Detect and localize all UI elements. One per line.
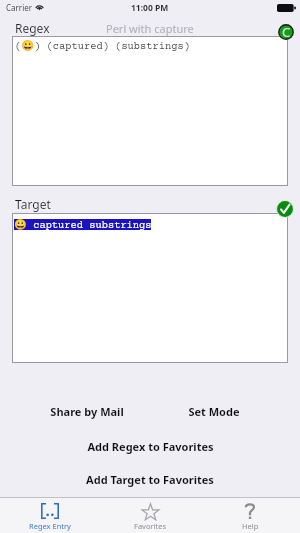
button[interactable]: (😀) (captured) (substrings)	[13, 37, 287, 185]
button[interactable]: Help	[200, 498, 300, 533]
staticText: (😀) (captured) (substrings)	[15, 39, 190, 52]
button[interactable]: Add Target to Favorites	[50, 465, 250, 493]
staticText: 11:00 PM	[131, 2, 169, 14]
button[interactable]: Regex Entry	[0, 498, 100, 533]
button[interactable]: Share by Mail	[27, 397, 147, 425]
staticText: Set Mode	[188, 404, 240, 419]
button[interactable]: 😀 captured substrings	[13, 214, 287, 362]
other: Regex is valid	[277, 23, 295, 41]
staticText: Target	[15, 196, 51, 212]
staticText: Carrier	[6, 2, 33, 13]
staticText: Favorites	[134, 521, 167, 531]
other: Target matches	[276, 200, 294, 218]
staticText: Perl with capture	[106, 21, 194, 36]
staticText: Add Regex to Favorites	[87, 439, 214, 454]
staticText: Add Target to Favorites	[86, 472, 214, 487]
staticText: Help	[242, 521, 259, 531]
button[interactable]: Add Regex to Favorites	[50, 432, 250, 460]
staticText: 😀 captured substrings	[14, 218, 152, 231]
staticText: Regex	[15, 20, 50, 36]
button[interactable]: Favorites	[100, 498, 200, 533]
staticText: C	[282, 23, 291, 41]
staticText: Share by Mail	[50, 404, 124, 419]
button[interactable]: Set Mode	[164, 397, 264, 425]
staticText: Regex Entry	[29, 521, 71, 531]
